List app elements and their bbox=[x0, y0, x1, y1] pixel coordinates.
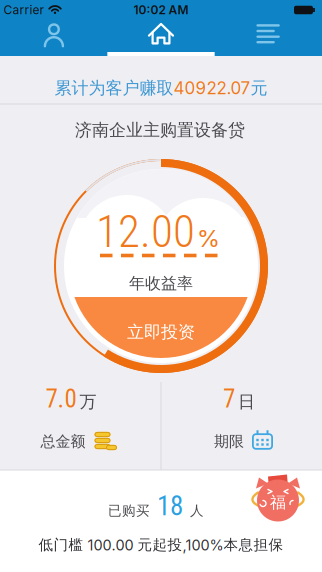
staticText: 40922.07 bbox=[173, 78, 250, 98]
staticText: 7.0 bbox=[45, 384, 76, 414]
button[interactable]: 产品列表 bbox=[215, 20, 322, 56]
staticText: 福 bbox=[270, 492, 286, 513]
staticText: 立即投资 bbox=[127, 321, 195, 343]
staticText: 期限 bbox=[214, 432, 244, 451]
button[interactable]: 福袋 bbox=[254, 475, 302, 520]
staticText: Carrier bbox=[3, 3, 44, 17]
button[interactable]: 累计为客户赚取 bbox=[0, 65, 322, 111]
staticText: 已购买 bbox=[108, 502, 150, 519]
staticText: 日 bbox=[238, 391, 255, 413]
staticText: 低门槛 100.00 元起投,100%本息担保 bbox=[38, 536, 283, 554]
staticText: 总金额 bbox=[40, 432, 85, 451]
staticText: 10:02 AM bbox=[133, 3, 188, 17]
staticText: 元 bbox=[250, 77, 267, 99]
staticText: 18 bbox=[157, 490, 183, 522]
button[interactable]: 立即投资 bbox=[74, 297, 248, 358]
staticText: 济南企业主购置设备贷 bbox=[75, 119, 245, 141]
staticText: 万 bbox=[79, 391, 96, 413]
staticText: 年收益率 bbox=[129, 273, 193, 294]
button[interactable]: 我的账户 bbox=[0, 20, 107, 56]
staticText: 12.00 bbox=[96, 205, 195, 258]
staticText: 人 bbox=[190, 502, 204, 519]
staticText: 7 bbox=[223, 384, 235, 414]
staticText: % bbox=[197, 224, 220, 253]
button[interactable]: 首页 bbox=[107, 20, 214, 56]
staticText: 累计为客户赚取 bbox=[54, 77, 173, 99]
